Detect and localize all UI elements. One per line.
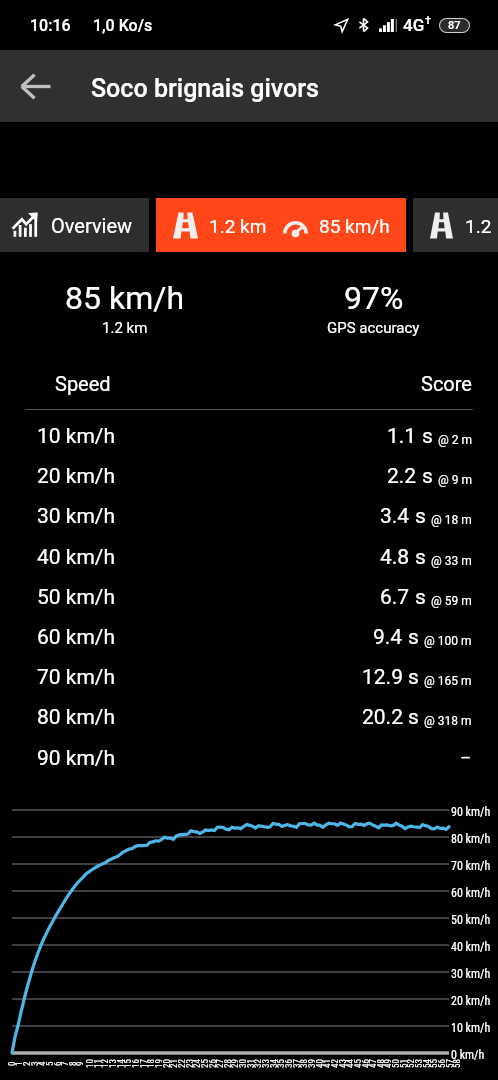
button[interactable]: 1.2 km <box>156 198 406 252</box>
staticText: 6 <box>53 1061 64 1066</box>
staticText: 10 <box>85 1059 96 1068</box>
staticText: 9 <box>75 1061 86 1066</box>
staticText: s <box>415 504 426 529</box>
staticText: 34 <box>269 1059 280 1068</box>
staticText: @ 100 m <box>424 634 472 648</box>
staticText: 70 km/h <box>37 665 116 690</box>
staticText: Soco brignais givors <box>91 74 320 103</box>
staticText: † <box>425 14 431 27</box>
staticText: 46 <box>361 1059 372 1068</box>
staticText: 18 <box>146 1059 157 1068</box>
staticText: 28 <box>223 1059 234 1068</box>
staticText: 33 <box>261 1059 272 1068</box>
staticText: 20 km/h <box>37 464 116 489</box>
staticText: GPS accuracy <box>327 319 420 337</box>
staticText: 90 km/h <box>451 805 491 819</box>
staticText: 56 <box>437 1059 448 1068</box>
button[interactable]: 90 km/h <box>25 738 473 778</box>
staticText: 54 <box>422 1059 433 1068</box>
staticText: 53 <box>414 1059 425 1068</box>
button[interactable]: 1.2 <box>413 198 498 252</box>
staticText: 3.4 <box>380 504 410 529</box>
staticText: 85 km/h <box>65 279 185 317</box>
staticText: 19 <box>154 1059 165 1068</box>
staticText: 60 km/h <box>451 886 491 900</box>
staticText: 87 <box>448 19 461 32</box>
button[interactable]: 50 km/h <box>25 577 473 617</box>
staticText: 13 <box>108 1059 119 1068</box>
staticText: 80 km/h <box>451 832 491 846</box>
staticText: s <box>408 665 419 690</box>
staticText: 70 km/h <box>451 859 491 873</box>
staticText: 43 <box>338 1059 349 1068</box>
staticText: 0 km/h <box>451 1048 485 1062</box>
staticText: @ 9 m <box>438 473 472 487</box>
staticText: 4 <box>37 1061 48 1066</box>
button[interactable]: 20 km/h <box>25 456 473 496</box>
staticText: s <box>422 464 433 489</box>
staticText: 30 <box>238 1059 249 1068</box>
staticText: 22 <box>177 1059 188 1068</box>
staticText: 2 <box>22 1061 33 1066</box>
staticText: 1,0 Ko/s <box>93 16 153 35</box>
staticText: 9.4 <box>373 625 403 650</box>
staticText: 51 <box>399 1059 410 1068</box>
staticText: 49 <box>383 1059 394 1068</box>
staticText: 12 <box>100 1059 111 1068</box>
staticText: 4.8 <box>380 545 410 570</box>
staticText: 21 <box>169 1059 180 1068</box>
staticText: @ 165 m <box>424 674 472 688</box>
staticText: 27 <box>215 1059 226 1068</box>
staticText: 10 km/h <box>451 1021 491 1035</box>
staticText: 6.7 <box>380 585 410 610</box>
button[interactable]: 30 km/h <box>25 496 473 536</box>
staticText: 1.2 km <box>209 215 267 237</box>
button[interactable]: 40 km/h <box>25 537 473 577</box>
staticText: @ 318 m <box>424 714 472 728</box>
staticText: 14 <box>116 1059 127 1068</box>
staticText: 47 <box>368 1059 379 1068</box>
button[interactable]: Overview <box>0 198 149 252</box>
staticText: 20 km/h <box>451 994 491 1008</box>
button[interactable]: 60 km/h <box>25 617 473 657</box>
staticText: 35 <box>276 1059 287 1068</box>
staticText: 90 km/h <box>37 746 116 771</box>
staticText: 1.2 km <box>102 319 148 337</box>
staticText: 32 <box>253 1059 264 1068</box>
staticText: s <box>422 424 433 449</box>
button[interactable]: Back <box>7 58 63 114</box>
staticText: 12.9 <box>362 665 403 690</box>
staticText: 30 km/h <box>37 504 116 529</box>
staticText: 10:16 <box>30 16 71 35</box>
staticText: @ 18 m <box>431 513 472 527</box>
staticText: 5 <box>45 1061 56 1066</box>
staticText: 30 km/h <box>451 967 491 981</box>
staticText: 40 km/h <box>451 940 491 954</box>
staticText: s <box>408 705 419 730</box>
staticText: 38 <box>299 1059 310 1068</box>
staticText: 60 km/h <box>37 625 116 650</box>
staticText: @ 59 m <box>431 594 472 608</box>
staticText: 16 <box>131 1059 142 1068</box>
staticText: 48 <box>376 1059 387 1068</box>
staticText: 37 <box>292 1059 303 1068</box>
staticText: 97% <box>344 279 404 317</box>
staticText: 58 <box>452 1059 463 1068</box>
staticText: 8 <box>68 1061 79 1066</box>
staticText: 42 <box>330 1059 341 1068</box>
staticText: s <box>415 545 426 570</box>
staticText: 50 km/h <box>451 913 491 927</box>
button[interactable]: 10 km/h <box>25 416 473 456</box>
staticText: 24 <box>192 1059 203 1068</box>
button[interactable]: 80 km/h <box>25 697 473 737</box>
staticText: 40 km/h <box>37 545 116 570</box>
staticText: 2.2 <box>387 464 417 489</box>
staticText: 55 <box>429 1059 440 1068</box>
staticText: @ 33 m <box>431 554 472 568</box>
staticText: 11 <box>93 1059 104 1068</box>
staticText: 10 km/h <box>37 424 116 449</box>
staticText: 50 <box>391 1059 402 1068</box>
staticText: 7 <box>60 1061 71 1066</box>
button[interactable]: 70 km/h <box>25 657 473 697</box>
staticText: 1 <box>14 1061 25 1066</box>
